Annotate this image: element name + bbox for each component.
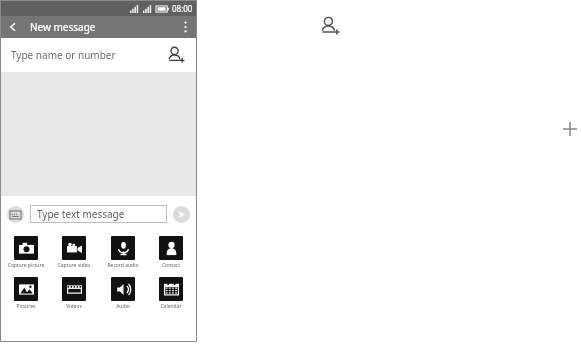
staticText: Capture video (52, 262, 96, 269)
button[interactable]: Audio (101, 277, 145, 310)
button[interactable]: Add contact (165, 44, 187, 66)
staticText: Capture picture (4, 262, 48, 269)
staticText: Pictures (4, 303, 48, 310)
staticText: New message (30, 20, 96, 34)
button[interactable]: Keyboard (7, 206, 24, 223)
button[interactable]: Add (558, 117, 581, 141)
button[interactable]: Calendar (149, 277, 193, 310)
button[interactable]: Capture picture (4, 236, 48, 269)
button[interactable]: Send (173, 206, 190, 223)
staticText: Calendar (149, 303, 193, 310)
staticText: Audio (101, 303, 145, 310)
button[interactable]: Capture video (52, 236, 96, 269)
button[interactable]: Pictures (4, 277, 48, 310)
button[interactable]: More options (176, 18, 194, 36)
button[interactable]: Record audio (101, 236, 145, 269)
button[interactable]: Type name or number (0, 38, 197, 72)
button[interactable]: Type text message (30, 205, 167, 223)
button[interactable]: Back (4, 18, 22, 36)
staticText: Record audio (101, 262, 145, 269)
button[interactable]: Contact (149, 236, 193, 269)
staticText: Contact (149, 262, 193, 269)
button[interactable]: Videos (52, 277, 96, 310)
staticText: 08:00 (172, 3, 193, 14)
button[interactable]: Add recipient (318, 14, 342, 38)
staticText: Type name or number (11, 48, 116, 62)
staticText: Videos (52, 303, 96, 310)
staticText: Type text message (37, 207, 125, 221)
